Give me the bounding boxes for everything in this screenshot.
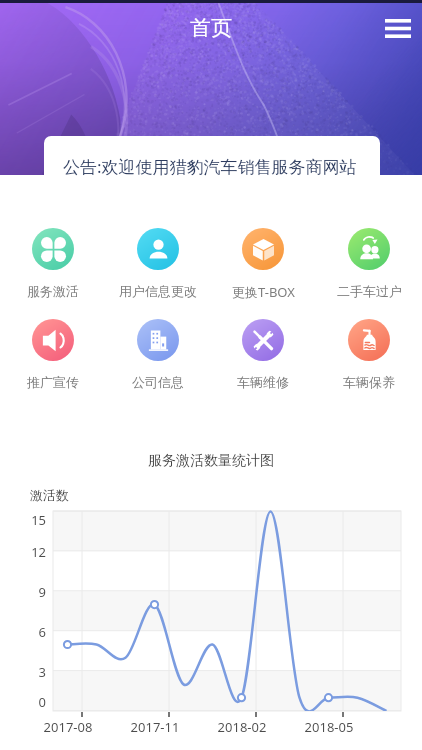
button[interactable]: 公司信息 xyxy=(105,319,210,390)
staticText: 2017-08 xyxy=(36,718,100,736)
staticText: 公告:欢迎使用猎豹汽车销售服务商网站 xyxy=(63,155,357,178)
staticText: 6 xyxy=(0,623,46,641)
staticText: 服务激活 xyxy=(27,283,79,299)
staticText: 公司信息 xyxy=(132,374,184,390)
staticText: 2018-02 xyxy=(210,718,274,736)
staticText: 激活数 xyxy=(30,487,69,503)
button[interactable]: 用户信息更改 xyxy=(105,228,210,299)
staticText: 推广宣传 xyxy=(27,374,79,390)
button[interactable]: 公告:欢迎使用猎豹汽车销售服务商网站 xyxy=(44,136,380,196)
staticText: 服务激活数量统计图 xyxy=(0,452,422,470)
staticText: 首页 xyxy=(48,15,374,41)
staticText: 车辆保养 xyxy=(343,374,395,390)
staticText: 15 xyxy=(0,511,46,529)
staticText: 3 xyxy=(0,663,46,681)
staticText: 12 xyxy=(0,543,46,561)
button[interactable]: 车辆保养 xyxy=(316,319,422,390)
button[interactable]: 车辆维修 xyxy=(210,319,316,390)
button[interactable]: 更换T-BOX xyxy=(210,228,316,301)
button[interactable]: 二手车过户 xyxy=(316,228,422,299)
staticText: 二手车过户 xyxy=(337,283,402,299)
staticText: 9 xyxy=(0,583,46,601)
staticText: 车辆维修 xyxy=(237,374,289,390)
staticText: 0 xyxy=(0,693,46,711)
staticText: 用户信息更改 xyxy=(119,283,197,299)
staticText: 更换T-BOX xyxy=(232,283,295,301)
button[interactable]: 服务激活 xyxy=(0,228,105,299)
staticText: 2018-05 xyxy=(297,718,361,736)
button[interactable]: 推广宣传 xyxy=(0,319,105,390)
button[interactable]: Menu xyxy=(374,4,422,52)
staticText: 2017-11 xyxy=(123,718,187,736)
